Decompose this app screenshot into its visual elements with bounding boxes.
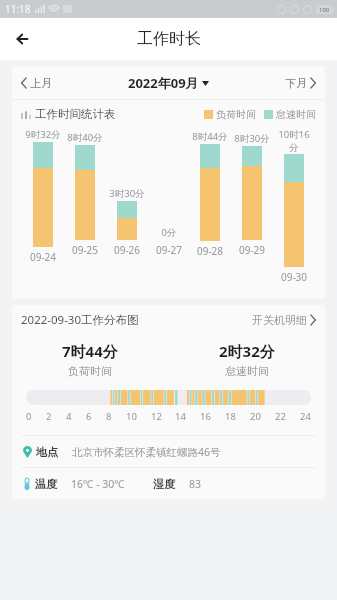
staticText: 20 [250,410,261,423]
staticText: 09-27 [149,243,189,257]
staticText: 湿度 [153,477,175,491]
staticText: 8 [106,410,112,423]
staticText: 12 [151,410,162,423]
staticText: 14 [175,410,186,423]
staticText: 10时16分 [274,128,314,153]
staticText: 09-24 [23,250,63,264]
staticText: 负荷时间 [216,108,256,121]
button[interactable]: 上月 [21,76,52,90]
staticText: 09-25 [65,243,105,257]
staticText: 4 [66,410,72,423]
button[interactable]: 下月 [285,76,316,90]
staticText: 2022年09月 [128,74,199,92]
staticText: 3时30分 [107,187,147,200]
staticText: 2022-09-30工作分布图 [21,312,139,328]
staticText: 8时30分 [232,132,272,145]
staticText: 下月 [285,76,307,90]
staticText: 工作时长 [137,29,201,49]
staticText: 6 [86,410,92,423]
staticText: 8时40分 [65,131,105,144]
staticText: 温度 [35,477,57,491]
staticText: 北京市怀柔区怀柔镇红螺路46号 [72,445,221,459]
staticText: 09-28 [190,244,230,258]
staticText: 2 [46,410,52,423]
staticText: 工作时间统计表 [35,107,116,121]
button[interactable]: 2022年09月 [128,74,209,92]
staticText: 18 [225,410,236,423]
button[interactable]: 开关机明细 [252,313,316,327]
staticText: 100 [319,6,330,14]
staticText: 22 [275,410,286,423]
staticText: 09-29 [232,243,272,257]
staticText: 09-26 [107,243,147,257]
staticText: 怠速时间 [225,364,269,378]
staticText: 怠速时间 [276,108,316,121]
staticText: 09-30 [274,270,314,284]
staticText: 24 [300,410,311,423]
staticText: 16℃ - 30℃ [71,477,125,491]
staticText: 0分 [149,226,189,239]
staticText: 11:18 [5,2,31,16]
staticText: 16 [200,410,211,423]
staticText: 7时44分 [62,341,118,361]
button[interactable]: Back [8,24,38,54]
staticText: 83 [189,477,202,491]
staticText: 负荷时间 [68,364,112,378]
staticText: 9时32分 [23,128,63,141]
staticText: 2时32分 [219,341,275,361]
staticText: 10 [126,410,137,423]
staticText: 8时44分 [190,130,230,143]
staticText: 上月 [30,76,52,90]
staticText: 地点 [36,445,58,459]
staticText: 0 [26,410,32,423]
staticText: 开关机明细 [252,313,307,327]
